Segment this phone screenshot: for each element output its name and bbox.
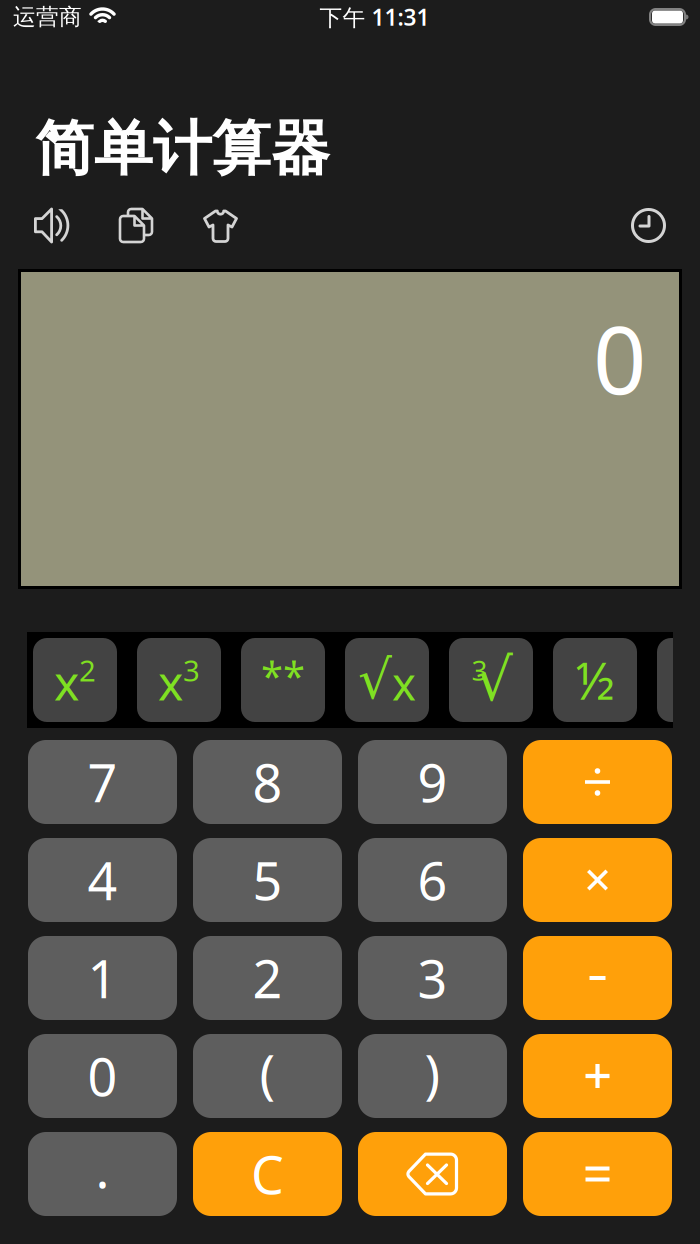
button[interactable]: History — [631, 208, 666, 243]
staticText: ) — [424, 1038, 440, 1108]
button[interactable]: 9 — [358, 740, 507, 824]
staticText: 3 — [183, 650, 200, 689]
button[interactable]: 0 — [28, 1034, 177, 1118]
button[interactable]: 5 — [193, 838, 342, 922]
staticText: C — [251, 1139, 284, 1209]
button[interactable]: ) — [358, 1034, 507, 1118]
button[interactable]: C — [193, 1132, 342, 1216]
staticText: x — [158, 650, 183, 714]
button[interactable]: ½ — [553, 638, 637, 722]
staticText: x — [392, 653, 416, 713]
staticText: 6 — [417, 845, 447, 915]
staticText: 0 — [87, 1041, 117, 1111]
staticText: 8 — [252, 747, 282, 817]
button[interactable] — [657, 638, 700, 722]
button[interactable]: Equals — [523, 1132, 672, 1216]
button[interactable]: Delete — [358, 1132, 507, 1216]
button[interactable]: 8 — [193, 740, 342, 824]
staticText: 5 — [252, 845, 282, 915]
staticText: 简单计算器 — [35, 113, 330, 185]
button[interactable]: Minus — [523, 936, 672, 1020]
staticText: ( — [259, 1038, 275, 1108]
staticText: 运营商 — [13, 3, 82, 31]
staticText: 0 — [593, 296, 646, 420]
staticText: . — [95, 1133, 109, 1203]
staticText: 7 — [87, 747, 117, 817]
staticText: 1 — [87, 943, 117, 1013]
button[interactable]: 7 — [28, 740, 177, 824]
staticText: 2 — [79, 650, 96, 689]
staticText: 下午 11:31 — [319, 2, 429, 32]
button[interactable]: . — [28, 1132, 177, 1216]
staticText: 3 — [471, 651, 487, 689]
staticText: ** — [261, 648, 305, 701]
staticText: 2 — [252, 943, 282, 1013]
button[interactable]: 3 — [358, 936, 507, 1020]
button[interactable]: ** — [241, 638, 325, 722]
button[interactable]: 2 — [193, 936, 342, 1020]
button[interactable]: 3 — [449, 638, 533, 722]
button[interactable]: Plus — [523, 1034, 672, 1118]
staticText: √ — [475, 647, 512, 713]
button[interactable]: x — [33, 638, 117, 722]
staticText: x — [54, 650, 79, 714]
button[interactable]: 1 — [28, 936, 177, 1020]
button[interactable]: 6 — [358, 838, 507, 922]
button[interactable]: 4 — [28, 838, 177, 922]
button[interactable]: √ — [345, 638, 429, 722]
button[interactable]: Copy — [118, 207, 154, 244]
staticText: √ — [358, 650, 392, 710]
button[interactable]: x — [137, 638, 221, 722]
staticText: 9 — [417, 747, 447, 817]
button[interactable]: Theme — [202, 207, 239, 243]
staticText: 3 — [417, 943, 447, 1013]
button[interactable]: Divide — [523, 740, 672, 824]
staticText: ½ — [575, 646, 614, 714]
button[interactable]: ( — [193, 1034, 342, 1118]
button[interactable]: Sound — [34, 207, 68, 244]
staticText: 4 — [87, 845, 117, 915]
button[interactable]: Multiply — [523, 838, 672, 922]
